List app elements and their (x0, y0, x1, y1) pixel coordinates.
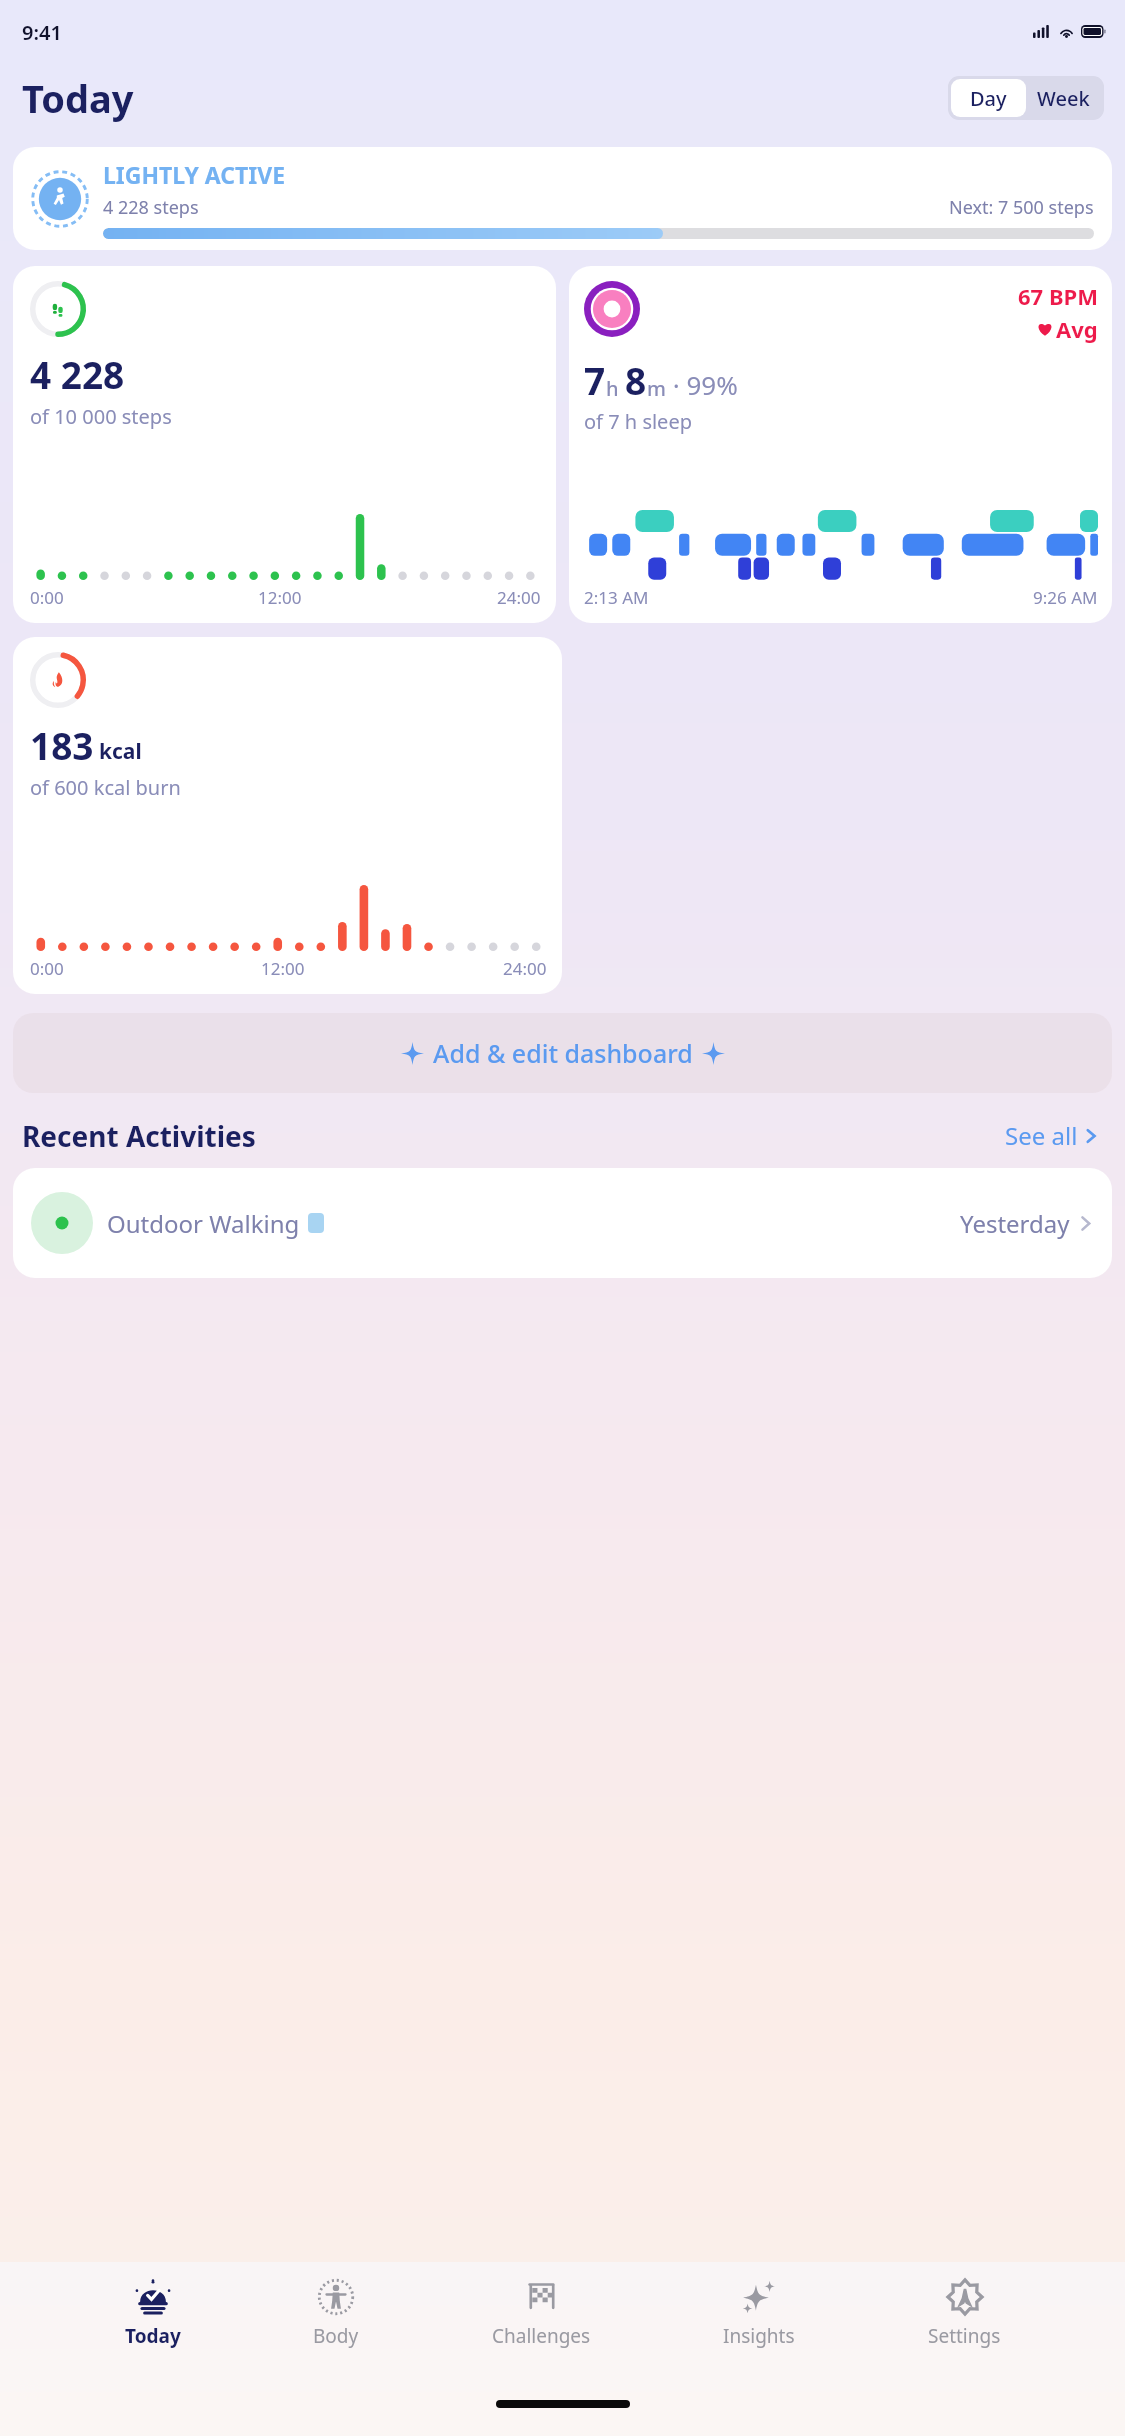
button[interactable]: Outdoor Walking (13, 1168, 1112, 1278)
button[interactable]: Day (951, 79, 1026, 117)
staticText: 9:26 AM (1033, 586, 1098, 609)
button[interactable]: 183 (13, 637, 562, 994)
staticText: 12:00 (258, 586, 302, 609)
staticText: Challenges (492, 2323, 591, 2349)
button[interactable]: Challenges (484, 2276, 599, 2351)
button[interactable]: Week (1026, 79, 1101, 117)
staticText: of 7 h sleep (584, 408, 692, 435)
staticText: Outdoor Walking (107, 1207, 300, 1240)
button[interactable]: Insights (715, 2276, 803, 2351)
staticText: Avg (1056, 314, 1098, 344)
button[interactable]: See all (1001, 1115, 1103, 1156)
staticText: h (606, 375, 619, 402)
staticText: 7 (584, 355, 606, 405)
staticText: 4 228 (30, 349, 125, 399)
staticText: Today (125, 2323, 181, 2349)
button[interactable]: 4 228 (13, 266, 556, 623)
staticText: Recent Activities (22, 1117, 256, 1155)
staticText: LIGHTLY ACTIVE (103, 159, 286, 190)
staticText: Add & edit dashboard (433, 1036, 693, 1070)
staticText: See all (1005, 1119, 1078, 1152)
staticText: · 99% (666, 367, 738, 402)
staticText: of 600 kcal burn (30, 774, 181, 801)
staticText: kcal (99, 737, 142, 766)
button[interactable]: Body (305, 2276, 367, 2351)
button[interactable]: Today (117, 2276, 189, 2351)
staticText: Next: 7 500 steps (949, 195, 1094, 220)
staticText: 0:00 (30, 957, 64, 980)
staticText: Week (1037, 85, 1090, 112)
staticText: Body (313, 2323, 359, 2349)
button[interactable]: Settings (920, 2276, 1009, 2351)
staticText: 0:00 (30, 586, 64, 609)
staticText: Insights (723, 2323, 795, 2349)
staticText: 183 (30, 720, 94, 770)
button[interactable]: 67 BPM (569, 266, 1112, 623)
staticText: 24:00 (497, 586, 541, 609)
button[interactable]: LIGHTLY ACTIVE (13, 147, 1112, 250)
staticText: 4 228 steps (103, 195, 199, 220)
staticText: 2:13 AM (584, 586, 649, 609)
staticText: 8 (625, 355, 647, 405)
staticText: 12:00 (261, 957, 305, 980)
staticText: Settings (928, 2323, 1001, 2349)
staticText: of 10 000 steps (30, 403, 172, 430)
staticText: Yesterday (960, 1207, 1070, 1240)
staticText: 9:41 (22, 19, 62, 46)
staticText: 24:00 (503, 957, 547, 980)
staticText: Today (22, 72, 134, 124)
staticText: Day (970, 85, 1007, 112)
button[interactable]: Add & edit dashboard (13, 1013, 1112, 1093)
staticText: 67 BPM (1018, 281, 1098, 311)
staticText: m (647, 375, 666, 402)
